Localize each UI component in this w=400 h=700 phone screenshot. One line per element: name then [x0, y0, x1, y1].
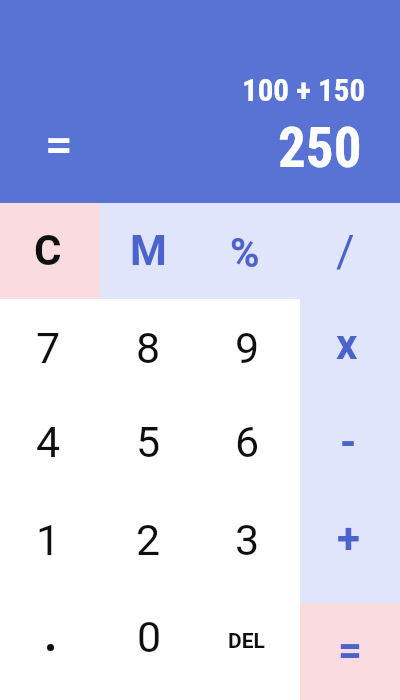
button[interactable]: DEL	[196, 593, 296, 689]
staticText: =	[45, 116, 73, 173]
button[interactable]: =	[300, 602, 400, 698]
staticText: 2	[136, 515, 161, 565]
staticText: 0	[137, 612, 162, 662]
staticText: C	[34, 226, 62, 275]
staticText: -	[340, 418, 357, 467]
staticText: +	[337, 514, 360, 563]
button[interactable]: 8	[98, 300, 198, 396]
staticText: 8	[136, 323, 161, 373]
staticText: x	[336, 320, 358, 369]
staticText: 9	[235, 323, 260, 373]
button[interactable]: 0	[99, 589, 199, 685]
staticText: =	[338, 626, 363, 675]
staticText: %	[230, 230, 260, 277]
button[interactable]: /	[295, 203, 395, 299]
button[interactable]: M	[98, 202, 198, 298]
button[interactable]: +	[298, 490, 398, 586]
staticText: DEL	[228, 629, 265, 654]
staticText: 100 + 150	[242, 72, 366, 108]
staticText: 1	[36, 515, 61, 565]
button[interactable]: x	[297, 296, 397, 392]
staticText: 5	[136, 417, 161, 467]
staticText: /	[336, 225, 355, 278]
button[interactable]: 6	[197, 394, 297, 490]
button[interactable]	[0, 603, 100, 700]
button[interactable]: %	[195, 205, 295, 301]
button[interactable]: -	[298, 394, 398, 490]
button[interactable]: 2	[98, 492, 198, 588]
button[interactable]: 5	[98, 394, 198, 490]
staticText: 7	[36, 323, 61, 373]
staticText: M	[130, 226, 167, 275]
button[interactable]: 7	[0, 300, 98, 396]
button[interactable]: 9	[197, 300, 297, 396]
staticText: 3	[235, 515, 260, 565]
button[interactable]: 3	[197, 492, 297, 588]
staticText: 250	[278, 116, 362, 180]
staticText: 6	[235, 417, 260, 467]
button[interactable]: C	[0, 202, 98, 298]
button[interactable]: 4	[0, 394, 98, 490]
staticText: 4	[36, 417, 61, 467]
button[interactable]: 1	[0, 492, 98, 588]
